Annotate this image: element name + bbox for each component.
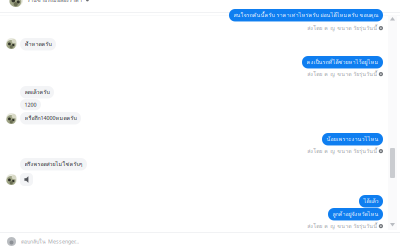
staticText: ส่งโดย ค ญ ขนาด วัยรุ่นวันนี้ <box>307 24 377 32</box>
staticText: ตอบกลับใน Messenger… <box>21 237 79 246</box>
staticText: 1200 <box>24 101 36 108</box>
button[interactable]: Scroll down <box>390 223 395 226</box>
button[interactable]: Voice message <box>20 173 33 186</box>
button[interactable]: ลดแล้วครับ <box>20 86 54 98</box>
staticText: ส่งโดย ค ญ ขนาด วัยรุ่นวันนี้ <box>307 70 377 78</box>
button[interactable]: ลูกค้าอยู่จังหวัดไหน <box>328 208 383 220</box>
button[interactable]: น้อยเพราะงานวไไหน <box>322 133 383 145</box>
button[interactable]: หรือถึก14000หมดครับ <box>20 112 81 124</box>
staticText: น้อยเพราะงานวไไหน <box>326 135 378 143</box>
staticText: ได้แล้ว <box>363 197 378 205</box>
button[interactable]: ร้านขายรถมือสองราคา <box>9 0 89 7</box>
staticText: ส่งโดย ค ญ ขนาด วัยรุ่นวันนี้ <box>307 222 377 230</box>
button[interactable]: สนใจรถคันนี้ครับ ราคาเท่าไหร่ครับ ผ่อนได… <box>229 9 383 21</box>
button[interactable]: ตรึงพรอดส่วยไม่ใช่ครับๆ <box>20 158 87 170</box>
button[interactable]: คงเป็นรถที่ได้ช่วยหาไว้อยู่ไหม <box>302 56 383 68</box>
staticText: คงเป็นรถที่ได้ช่วยหาไว้อยู่ไหม <box>306 58 378 66</box>
button[interactable]: Scroll up <box>390 17 395 20</box>
button[interactable]: ฟ้าหาดครับ <box>20 38 56 50</box>
staticText: ลดแล้วครับ <box>24 88 49 96</box>
staticText: ส่งโดย ค ญ ขนาด วัยรุ่นวันนี้ <box>307 147 377 155</box>
staticText: ลูกค้าอยู่จังหวัดไหน <box>332 210 378 218</box>
staticText: หรือถึก14000หมดครับ <box>24 114 76 122</box>
staticText: ร้านขายรถมือสองราคา <box>27 0 82 4</box>
button[interactable]: 1200 <box>20 99 41 110</box>
staticText: ฟ้าหาดครับ <box>24 40 51 48</box>
button[interactable]: ได้แล้ว <box>359 195 383 207</box>
staticText: ตรึงพรอดส่วยไม่ใช่ครับๆ <box>24 160 82 168</box>
button[interactable]: ตอบกลับใน Messenger… <box>7 237 79 246</box>
staticText: สนใจรถคันนี้ครับ ราคาเท่าไหร่ครับ ผ่อนได… <box>233 11 378 19</box>
